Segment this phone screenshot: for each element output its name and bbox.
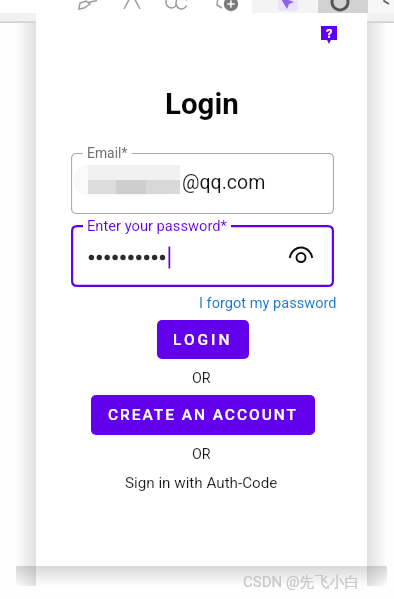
staticText: OR <box>192 446 211 463</box>
button[interactable]: Enter your password* <box>71 225 334 287</box>
staticText: LOGIN <box>173 331 233 349</box>
staticText: OR <box>192 370 211 387</box>
button[interactable]: LOGIN <box>157 320 249 359</box>
staticText: CREATE AN ACCOUNT <box>108 406 298 424</box>
button[interactable]: CREATE AN ACCOUNT <box>91 395 315 435</box>
staticText: ? <box>326 26 333 41</box>
staticText: Enter your password* <box>87 217 227 234</box>
staticText: @qq.com <box>182 171 266 194</box>
staticText: CSDN @先飞小白 <box>243 573 360 592</box>
button[interactable]: Email* <box>71 153 334 214</box>
button[interactable]: Show password <box>289 247 313 264</box>
staticText: Email* <box>87 145 128 161</box>
staticText: Login <box>165 87 239 122</box>
button[interactable]: Sign in with Auth-Code <box>125 474 278 492</box>
button[interactable]: Help <box>321 26 337 44</box>
button[interactable]: I forgot my password <box>199 294 337 311</box>
